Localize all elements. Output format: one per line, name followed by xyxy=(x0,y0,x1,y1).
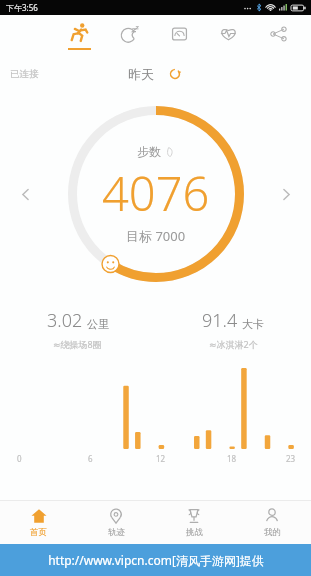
button[interactable]: 体重 xyxy=(162,15,196,57)
staticText: 18 xyxy=(227,453,237,464)
staticText: 昨天 xyxy=(128,66,154,82)
button[interactable]: 步数 xyxy=(68,106,244,282)
staticText: 12 xyxy=(156,453,166,464)
staticText: http://www.vipcn.com[清风手游网]提供 xyxy=(48,552,264,568)
staticText: 0 xyxy=(17,453,22,464)
staticText: 4076 xyxy=(102,161,210,225)
staticText: 首页 xyxy=(30,527,47,538)
staticText: ≈绕操场8圈 xyxy=(53,338,102,350)
button[interactable]: 刷新 xyxy=(166,65,184,83)
button[interactable]: 睡眠 xyxy=(112,15,146,57)
staticText: 已连接 xyxy=(10,68,39,80)
button[interactable]: 运动 xyxy=(62,15,96,57)
staticText: 91.4 xyxy=(202,308,238,333)
staticText: 我的 xyxy=(264,527,281,538)
staticText: 23 xyxy=(286,453,296,464)
staticText: 目标 7000 xyxy=(126,227,186,245)
button[interactable]: 我的 xyxy=(233,501,311,544)
staticText: 步数 xyxy=(137,144,161,159)
button[interactable]: 轨迹 xyxy=(77,501,155,544)
button[interactable]: 心率 xyxy=(211,15,245,57)
button[interactable]: 挑战 xyxy=(155,501,233,544)
staticText: ≈冰淇淋2个 xyxy=(209,338,258,350)
button[interactable]: 91.4 xyxy=(155,306,311,352)
staticText: 公里 xyxy=(87,317,109,331)
staticText: 挑战 xyxy=(186,527,203,538)
staticText: 6 xyxy=(88,453,93,464)
button[interactable]: 分享 xyxy=(261,15,295,57)
button[interactable]: 3.02 xyxy=(0,306,155,352)
staticText: 下午3:56 xyxy=(6,2,38,13)
button[interactable]: 首页 xyxy=(0,501,77,544)
button[interactable]: 上一天 xyxy=(12,181,38,207)
button[interactable]: 下一天 xyxy=(273,181,299,207)
staticText: 轨迹 xyxy=(108,527,125,538)
staticText: 大卡 xyxy=(242,317,264,331)
staticText: 3.02 xyxy=(47,308,83,333)
